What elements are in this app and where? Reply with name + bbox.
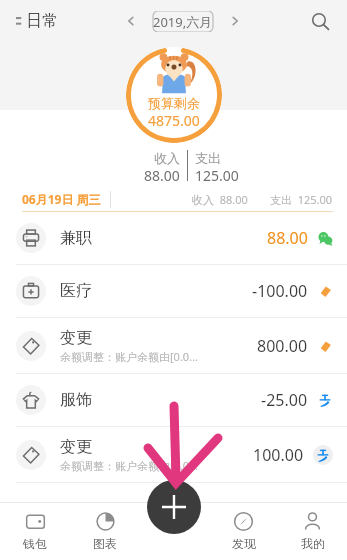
staticText: 800.00 bbox=[257, 335, 308, 357]
button[interactable]: 变更 bbox=[0, 318, 347, 373]
staticText: 医疗 bbox=[60, 281, 92, 301]
staticText: 图表 bbox=[93, 536, 117, 551]
button[interactable]: 2019,六月 bbox=[146, 11, 220, 32]
staticText: -100.00 bbox=[252, 280, 308, 302]
staticText: 服饰 bbox=[60, 390, 92, 410]
button[interactable]: 我的 bbox=[278, 502, 347, 560]
staticText: -25.00 bbox=[261, 389, 308, 411]
staticText: 钱包 bbox=[23, 536, 47, 551]
button[interactable]: Add record bbox=[147, 480, 201, 534]
staticText: 我的 bbox=[301, 536, 325, 551]
button[interactable]: 兼职 bbox=[0, 212, 347, 264]
button[interactable]: 医疗 bbox=[0, 265, 347, 317]
staticText: 125.00 bbox=[195, 166, 239, 185]
button[interactable]: 服饰 bbox=[0, 374, 347, 426]
staticText: 发现 bbox=[232, 536, 256, 551]
staticText: 日常 bbox=[26, 11, 58, 31]
staticText: 变更 bbox=[60, 437, 92, 457]
button[interactable]: 变更 bbox=[0, 427, 347, 482]
staticText: 收入 88.00 bbox=[192, 192, 248, 207]
staticText: 支出 bbox=[195, 150, 221, 166]
button[interactable]: 预算剩余 bbox=[126, 47, 222, 143]
staticText: 余额调整：账户余额由[0.0… bbox=[60, 458, 198, 473]
staticText: 88.00 bbox=[267, 227, 308, 249]
button[interactable]: 日常 bbox=[14, 8, 60, 34]
button[interactable]: 图表 bbox=[70, 502, 140, 560]
staticText: 变更 bbox=[60, 328, 92, 348]
button[interactable]: Next month bbox=[224, 10, 246, 32]
button[interactable]: Previous month bbox=[120, 10, 142, 32]
staticText: 支出 125.00 bbox=[270, 192, 333, 207]
staticText: 100.00 bbox=[253, 444, 304, 466]
staticText: 余额调整：账户余额由[0.0… bbox=[60, 349, 198, 364]
staticText: 88.00 bbox=[144, 166, 180, 185]
staticText: 预算剩余 bbox=[148, 95, 200, 111]
button[interactable]: 发现 bbox=[209, 502, 278, 560]
staticText: 收入 bbox=[154, 150, 180, 166]
staticText: 2019,六月 bbox=[153, 13, 213, 31]
staticText: 4875.00 bbox=[148, 111, 200, 130]
button[interactable]: 钱包 bbox=[0, 502, 70, 560]
button[interactable]: Search bbox=[307, 8, 333, 34]
staticText: 06月19日 周三 bbox=[22, 191, 101, 207]
staticText: 兼职 bbox=[60, 228, 92, 248]
